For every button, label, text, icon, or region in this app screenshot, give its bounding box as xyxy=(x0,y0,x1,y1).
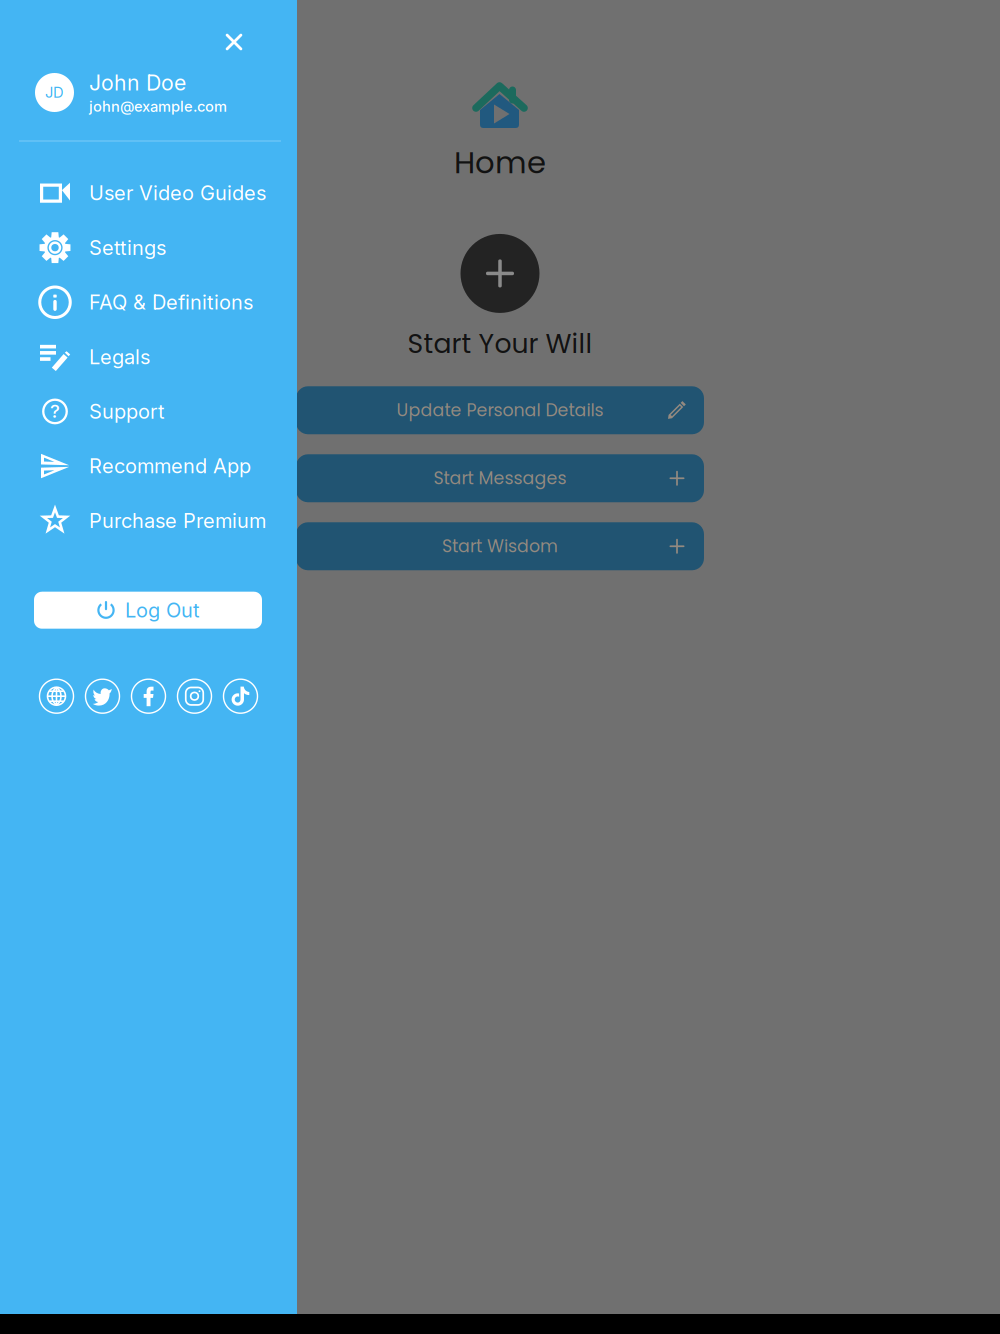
button[interactable]: Update Personal Details xyxy=(296,386,704,434)
staticText: john@example.com xyxy=(89,97,227,115)
staticText: Home xyxy=(454,141,546,184)
staticText: John Doe xyxy=(89,70,186,95)
button[interactable]: Facebook xyxy=(131,679,166,714)
staticText: Update Personal Details xyxy=(396,398,603,422)
button[interactable]: FAQ & Definitions xyxy=(0,275,297,330)
button[interactable]: Recommend App xyxy=(0,439,297,493)
button[interactable]: Legals xyxy=(0,330,297,384)
staticText: ? xyxy=(50,400,60,422)
staticText: Start Messages xyxy=(433,466,566,490)
button[interactable]: Twitter xyxy=(85,679,120,714)
staticText: FAQ & Definitions xyxy=(89,290,253,314)
button[interactable]: Close menu xyxy=(209,9,259,59)
button[interactable]: Start Your Will xyxy=(407,234,592,362)
button[interactable]: Instagram xyxy=(177,679,212,714)
staticText: Recommend App xyxy=(89,454,251,478)
button[interactable]: Start Wisdom xyxy=(296,522,704,570)
button[interactable]: ? xyxy=(0,384,297,439)
button[interactable]: User Video Guides xyxy=(0,166,297,220)
button[interactable]: Website xyxy=(39,679,74,714)
staticText: JD xyxy=(45,84,64,101)
button[interactable]: Log Out xyxy=(34,592,262,629)
staticText: Purchase Premium xyxy=(89,509,266,533)
button[interactable]: Settings xyxy=(0,220,297,275)
staticText: Log Out xyxy=(125,598,200,622)
staticText: Settings xyxy=(89,236,166,260)
button[interactable]: Start Messages xyxy=(296,454,704,502)
button[interactable]: JD xyxy=(0,68,297,117)
staticText: Start Your Will xyxy=(407,325,592,362)
staticText: Legals xyxy=(89,345,150,369)
button[interactable]: Purchase Premium xyxy=(0,493,297,548)
staticText: Start Wisdom xyxy=(442,534,558,558)
staticText: User Video Guides xyxy=(89,181,266,205)
button[interactable]: TikTok xyxy=(223,679,258,714)
staticText: Support xyxy=(89,399,165,424)
